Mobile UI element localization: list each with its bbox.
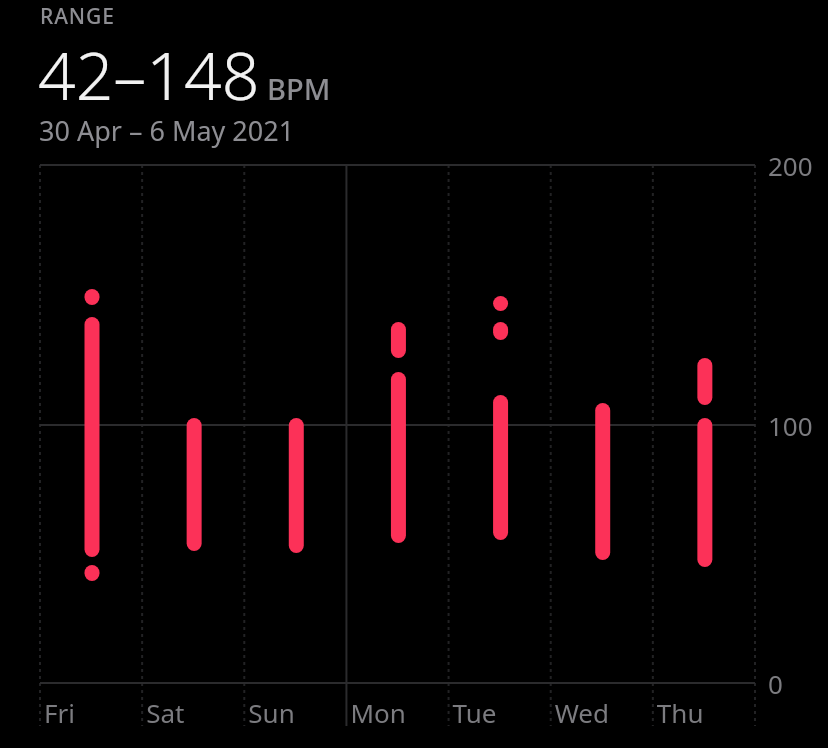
button[interactable]: Heart rate range chart	[0, 0, 828, 748]
